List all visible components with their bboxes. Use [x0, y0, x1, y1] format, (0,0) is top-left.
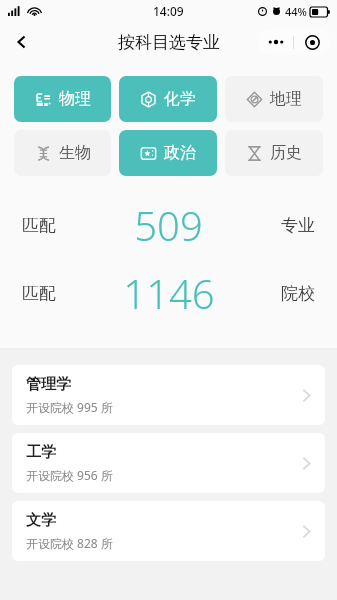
button[interactable]: 工学	[12, 433, 325, 493]
button[interactable]: 政治	[119, 130, 217, 176]
staticText: 地理	[270, 89, 302, 109]
staticText: 开设院校 828 所	[26, 535, 113, 551]
button[interactable]: More	[258, 29, 293, 55]
staticText: 化学	[164, 89, 196, 109]
staticText: 按科目选专业	[118, 32, 220, 53]
staticText: 物理	[59, 89, 91, 109]
button[interactable]: Back	[4, 24, 40, 60]
staticText: 509	[134, 198, 203, 252]
staticText: 院校	[281, 283, 315, 304]
staticText: 管理学	[26, 375, 71, 394]
staticText: 开设院校 956 所	[26, 467, 113, 483]
button[interactable]: 历史	[225, 130, 323, 176]
staticText: 14:09	[153, 3, 184, 19]
staticText: 文学	[26, 511, 56, 530]
staticText: 开设院校 995 所	[26, 399, 113, 415]
button[interactable]: 管理学	[12, 365, 325, 425]
button[interactable]: 文学	[12, 501, 325, 561]
staticText: 历史	[270, 143, 302, 163]
staticText: 匹配	[22, 283, 56, 304]
staticText: 专业	[281, 215, 315, 236]
button[interactable]: 化学	[119, 76, 217, 122]
staticText: 44%	[285, 4, 307, 19]
button[interactable]: 地理	[225, 76, 323, 122]
staticText: 匹配	[22, 215, 56, 236]
button[interactable]: Close	[294, 29, 330, 55]
button[interactable]: 生物	[14, 130, 111, 176]
staticText: 政治	[164, 143, 196, 163]
staticText: 工学	[26, 443, 56, 462]
staticText: 生物	[59, 143, 91, 163]
staticText: 1146	[123, 266, 215, 320]
button[interactable]: 物理	[14, 76, 111, 122]
